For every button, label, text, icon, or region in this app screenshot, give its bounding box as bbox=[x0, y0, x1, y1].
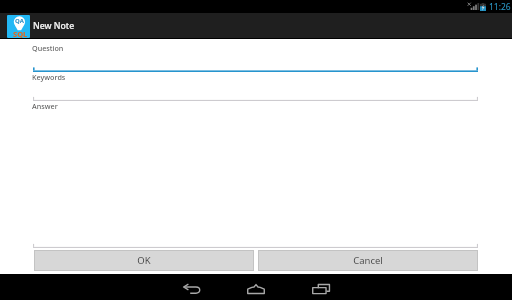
button[interactable]: Answer bbox=[32, 99, 479, 248]
button[interactable]: QA bbox=[0, 13, 512, 39]
button[interactable]: Back bbox=[175, 274, 209, 300]
staticText: Cancel bbox=[353, 254, 383, 267]
staticText: SQL bbox=[13, 29, 28, 38]
button[interactable]: Keywords bbox=[32, 70, 479, 101]
staticText: OK bbox=[137, 254, 151, 267]
staticText: QA bbox=[15, 17, 24, 25]
button[interactable]: Home bbox=[239, 274, 273, 300]
button[interactable]: Recent apps bbox=[304, 274, 338, 300]
staticText: Answer bbox=[32, 101, 58, 111]
staticText: 11:26 bbox=[489, 1, 511, 13]
button[interactable]: Question bbox=[32, 41, 479, 72]
staticText: New Note bbox=[33, 20, 75, 32]
button[interactable]: OK bbox=[34, 250, 254, 271]
staticText: Keywords bbox=[32, 72, 66, 82]
staticText: Question bbox=[32, 43, 64, 53]
button[interactable]: Cancel bbox=[258, 250, 478, 271]
